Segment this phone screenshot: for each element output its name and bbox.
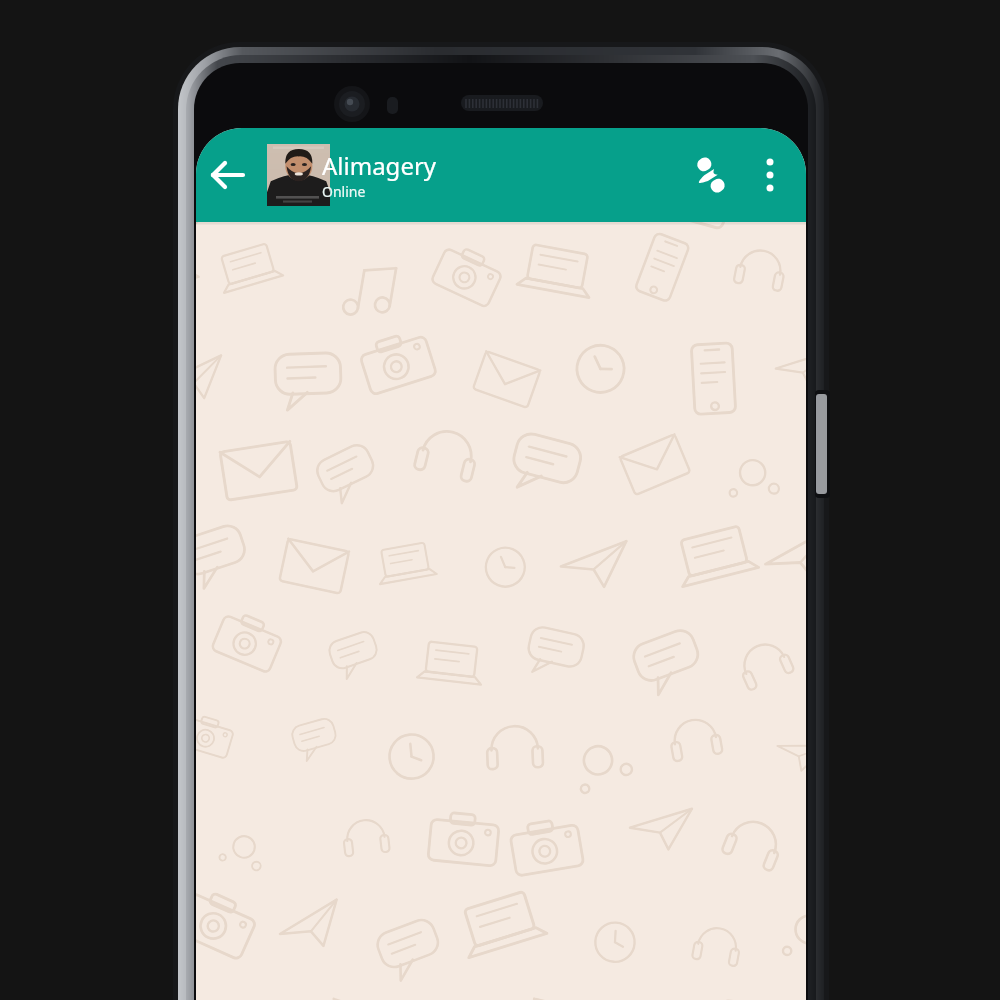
staticText: Alimagery [322, 149, 437, 182]
button[interactable]: More options [752, 128, 800, 222]
button[interactable]: Back [196, 128, 254, 222]
button[interactable]: Voice call [694, 128, 752, 222]
button[interactable]: Alimagery [322, 128, 694, 222]
staticText: Online [322, 182, 366, 201]
button[interactable]: Contact photo [254, 128, 322, 222]
